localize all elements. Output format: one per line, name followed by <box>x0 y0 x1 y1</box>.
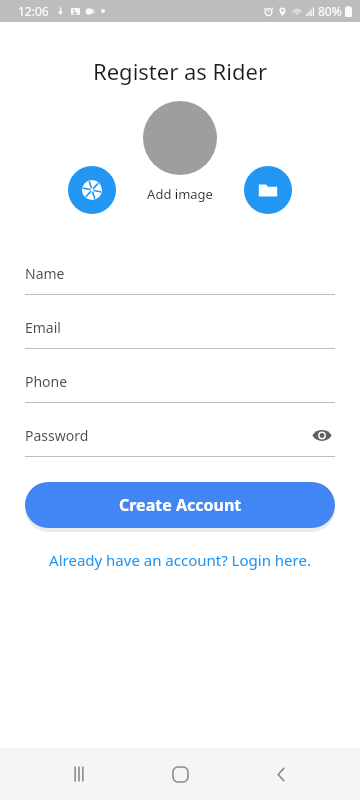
button[interactable]: Phone <box>25 360 335 414</box>
staticText: Create Account <box>119 494 242 516</box>
button[interactable]: Name <box>25 252 335 306</box>
staticText: Phone <box>25 372 68 391</box>
button[interactable]: Take photo with camera <box>68 166 116 214</box>
button[interactable]: Home <box>158 752 202 796</box>
button[interactable]: Already have an account? Login here. <box>0 546 360 574</box>
button[interactable]: Choose image from files <box>244 166 292 214</box>
staticText: Name <box>25 264 65 283</box>
button[interactable]: Profile image <box>143 101 217 175</box>
staticText: Add image <box>0 185 360 203</box>
button[interactable]: Create Account <box>25 482 335 528</box>
button[interactable]: Recent apps <box>57 752 101 796</box>
button[interactable]: Show password <box>309 422 335 448</box>
button[interactable]: Email <box>25 306 335 360</box>
staticText: Register as Rider <box>0 56 360 86</box>
staticText: 12:06 <box>18 3 49 19</box>
staticText: Email <box>25 318 61 337</box>
staticText: Password <box>25 426 89 445</box>
staticText: 80% <box>318 3 342 19</box>
button[interactable]: Password <box>25 414 335 468</box>
button[interactable]: Back <box>259 752 303 796</box>
